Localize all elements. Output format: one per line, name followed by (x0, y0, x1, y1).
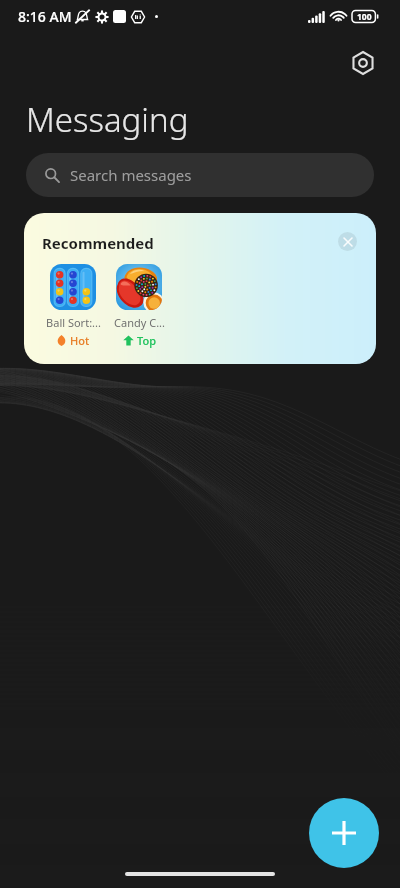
staticText: Candy C... (114, 315, 165, 330)
staticText: 100 (357, 11, 372, 23)
button[interactable]: Search messages (26, 153, 374, 197)
staticText: Search messages (70, 165, 192, 185)
staticText: Top (137, 333, 156, 348)
staticText: Ball Sort:... (46, 315, 101, 330)
button[interactable]: Dismiss (338, 232, 357, 251)
staticText: Recommended (42, 233, 154, 253)
staticText: Hot (70, 333, 90, 348)
button[interactable]: New conversation (309, 798, 379, 868)
button[interactable]: Ball Sort:... (41, 264, 105, 348)
button[interactable]: Candy C... (107, 264, 171, 348)
staticText: Messaging (26, 97, 189, 142)
staticText: 8:16 AM (18, 7, 72, 26)
button[interactable]: Settings (347, 47, 379, 79)
button[interactable]: Recommended (24, 213, 376, 364)
